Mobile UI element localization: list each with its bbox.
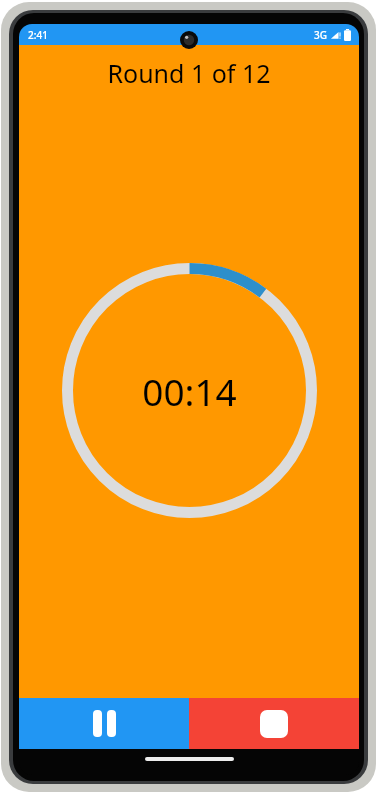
button[interactable]: Pause — [19, 698, 189, 749]
staticText: 3G — [314, 28, 327, 42]
staticText: Round 1 of 12 — [107, 56, 271, 90]
staticText: 00:14 — [142, 366, 237, 416]
button[interactable]: Stop — [189, 698, 359, 749]
staticText: 2:41 — [28, 28, 48, 42]
